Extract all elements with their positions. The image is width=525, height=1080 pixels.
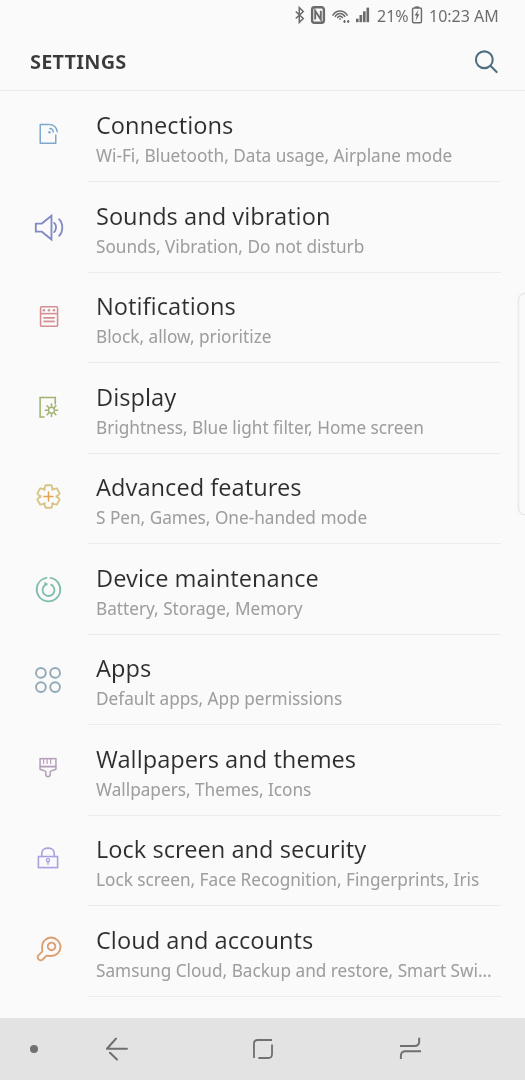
button[interactable]: Connections: [0, 91, 525, 182]
staticText: Device maintenance: [96, 562, 319, 594]
button[interactable]: Back: [93, 1025, 141, 1073]
staticText: Wallpapers, Themes, Icons: [96, 778, 312, 801]
staticText: Display: [96, 381, 177, 413]
staticText: Lock screen, Face Recognition, Fingerpri…: [96, 868, 480, 891]
staticText: Cloud and accounts: [96, 924, 314, 956]
staticText: Notifications: [96, 290, 236, 322]
staticText: Apps: [96, 652, 152, 684]
staticText: 21%: [377, 5, 409, 27]
staticText: Default apps, App permissions: [96, 687, 343, 710]
button[interactable]: Apps: [0, 634, 525, 725]
staticText: Wi-Fi, Bluetooth, Data usage, Airplane m…: [96, 144, 453, 167]
button[interactable]: Cloud and accounts: [0, 906, 525, 997]
button[interactable]: Display: [0, 363, 525, 454]
staticText: Wallpapers and themes: [96, 743, 357, 775]
staticText: Sounds, Vibration, Do not disturb: [96, 235, 365, 258]
staticText: Connections: [96, 109, 234, 141]
button[interactable]: Search: [463, 39, 509, 85]
button[interactable]: Wallpapers and themes: [0, 725, 525, 816]
staticText: S Pen, Games, One-handed mode: [96, 506, 368, 529]
staticText: Battery, Storage, Memory: [96, 597, 303, 620]
staticText: Brightness, Blue light filter, Home scre…: [96, 416, 424, 439]
button[interactable]: Home: [239, 1025, 287, 1073]
staticText: Block, allow, prioritize: [96, 325, 272, 348]
staticText: Lock screen and security: [96, 833, 367, 865]
staticText: SETTINGS: [30, 48, 127, 75]
staticText: 10:23 AM: [429, 5, 499, 27]
button[interactable]: Advanced features: [0, 453, 525, 544]
staticText: Advanced features: [96, 471, 302, 503]
button[interactable]: Device maintenance: [0, 544, 525, 635]
button[interactable]: Recent apps: [386, 1025, 434, 1073]
button[interactable]: Lock screen and security: [0, 815, 525, 906]
staticText: Sounds and vibration: [96, 200, 331, 232]
button[interactable]: Notifications: [0, 272, 525, 363]
staticText: Samsung Cloud, Backup and restore, Smart…: [96, 959, 492, 982]
button[interactable]: Sounds and vibration: [0, 182, 525, 273]
